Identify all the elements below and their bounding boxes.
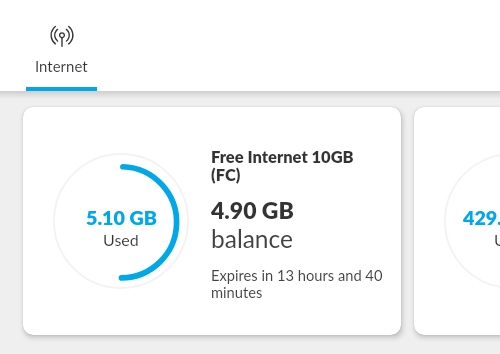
staticText: Used — [494, 230, 500, 249]
other: Internet — [49, 25, 75, 51]
button[interactable]: 429.83 MB — [414, 107, 500, 335]
staticText: 5.10 GB — [86, 206, 157, 230]
button[interactable]: Internet — [26, 0, 97, 91]
staticText: balance — [211, 224, 293, 253]
button[interactable]: 5.10 GB — [23, 107, 401, 335]
staticText: 429.83 MB — [463, 206, 500, 230]
staticText: Free Internet 10GB (FC) — [211, 147, 361, 184]
staticText: Expires in 13 hours and 40 minutes — [211, 266, 387, 302]
staticText: 4.90 GB — [211, 196, 294, 224]
staticText: Used — [103, 230, 139, 249]
staticText: Internet — [35, 57, 88, 75]
